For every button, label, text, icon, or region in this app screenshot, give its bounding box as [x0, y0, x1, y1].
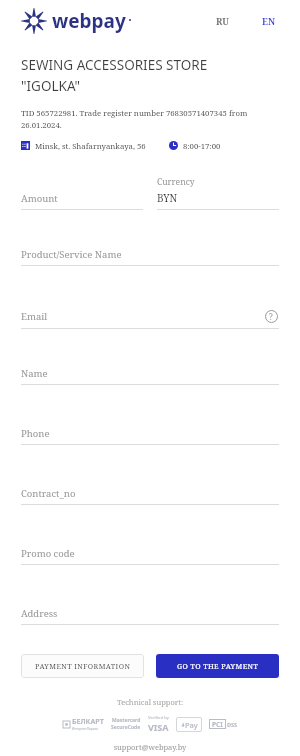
staticText: Currency	[157, 176, 195, 188]
staticText: Product/Service Name	[21, 248, 279, 261]
staticText: Verified by	[148, 715, 169, 721]
staticText: ?	[269, 311, 273, 322]
staticText: GO TO THE PAYMENT	[177, 661, 259, 671]
staticText: PAYMENT INFORMATION	[35, 661, 131, 671]
staticText: TID 565722981. Trade register number 768…	[21, 108, 279, 131]
button[interactable]: Promo code	[21, 547, 279, 565]
staticText: 8:00-17:00	[183, 141, 221, 152]
staticText: Address	[21, 607, 279, 620]
staticText: SecureCode	[111, 724, 141, 731]
staticText: ИнтернетПароль	[72, 727, 99, 731]
staticText: Amount	[21, 192, 143, 205]
button[interactable]: Contract_no	[21, 487, 279, 505]
button[interactable]: support@webpay.by	[21, 742, 279, 752]
button[interactable]: Product/Service Name	[21, 248, 279, 266]
button[interactable]: Amount	[21, 192, 143, 210]
button[interactable]: webpay	[21, 8, 132, 34]
staticText: VISA	[148, 721, 169, 733]
staticText: Contract_no	[21, 487, 279, 500]
staticText: DSS	[227, 721, 238, 728]
staticText: Mastercard	[112, 717, 141, 724]
staticText: PCI	[212, 720, 223, 729]
button[interactable]: Help	[263, 308, 279, 324]
staticText: webpay	[52, 8, 126, 34]
staticText: EN	[262, 15, 275, 27]
staticText: RU	[216, 15, 230, 27]
staticText: Promo code	[21, 547, 279, 560]
button[interactable]: Name	[21, 367, 279, 385]
button[interactable]: EN	[258, 13, 279, 29]
staticText: BYN	[157, 191, 178, 205]
staticText: Phone	[21, 427, 279, 440]
button[interactable]: Currency	[157, 176, 279, 210]
staticText: Technical support:	[21, 697, 279, 707]
button[interactable]: RU	[212, 13, 234, 29]
button[interactable]: Phone	[21, 427, 279, 445]
staticText: Minsk, st. Shafarnyankaya, 56	[35, 141, 146, 152]
button[interactable]: GO TO THE PAYMENT	[156, 654, 279, 678]
staticText: Name	[21, 367, 279, 380]
button[interactable]: Address	[21, 607, 279, 625]
staticText: Email	[21, 310, 263, 323]
staticText: БЕЛКАРТ	[72, 717, 104, 727]
staticText: SEWING ACCESSORIES STORE "IGOLKA"	[21, 56, 208, 95]
staticText: Pay	[185, 720, 198, 730]
button[interactable]: PAYMENT INFORMATION	[21, 654, 144, 678]
button[interactable]: Email	[21, 308, 279, 329]
